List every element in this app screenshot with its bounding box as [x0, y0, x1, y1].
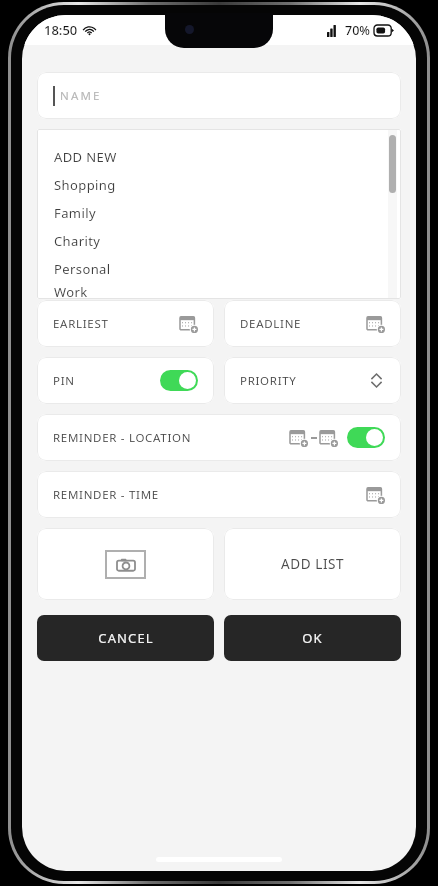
button[interactable]: CANCEL — [37, 615, 214, 661]
button[interactable]: REMINDER - LOCATION — [37, 414, 401, 461]
staticText: Family — [54, 204, 96, 222]
button[interactable]: REMINDER - TIME — [37, 471, 401, 518]
staticText: 18:50 — [44, 21, 78, 39]
button[interactable]: PIN — [37, 357, 214, 404]
staticText: ADD NEW — [54, 148, 117, 166]
button[interactable]: Toggle — [347, 427, 385, 448]
staticText: NAME — [60, 88, 102, 104]
button[interactable]: ADD NEW — [54, 143, 401, 171]
button[interactable]: EARLIEST — [37, 300, 214, 347]
staticText: LOCATION — [53, 259, 116, 275]
staticText: PLACE COMMENT — [53, 202, 158, 218]
staticText: Charity — [54, 232, 101, 250]
button[interactable]: CATEGORY — [37, 129, 401, 176]
button[interactable]: Personal — [54, 255, 401, 283]
staticText: REMINDER - LOCATION — [53, 430, 192, 446]
staticText: PIN — [53, 373, 75, 389]
staticText: Shopping — [54, 176, 116, 194]
button[interactable]: Family — [54, 199, 401, 227]
button[interactable]: Toggle — [160, 370, 198, 391]
staticText: ADD LIST — [281, 555, 345, 573]
button[interactable]: ADD LIST — [224, 528, 401, 600]
staticText: REMINDER - TIME — [53, 487, 159, 503]
button[interactable]: PLACE COMMENT — [37, 186, 401, 233]
staticText: DEADLINE — [240, 316, 302, 332]
button[interactable]: Shopping — [54, 171, 401, 199]
staticText: CANCEL — [98, 629, 154, 647]
staticText: EARLIEST — [53, 316, 109, 332]
button[interactable]: DEADLINE — [224, 300, 401, 347]
button[interactable]: PRIORITY — [224, 357, 401, 404]
staticText: Work — [54, 283, 88, 299]
staticText: Personal — [54, 260, 111, 278]
staticText: 70% — [345, 22, 370, 39]
button[interactable]: Take photo — [37, 528, 214, 600]
staticText: PRIORITY — [240, 373, 297, 389]
staticText: CATEGORY — [53, 145, 117, 161]
button[interactable]: Charity — [54, 227, 401, 255]
button[interactable]: NAME — [37, 72, 401, 119]
button[interactable]: LOCATION — [37, 243, 401, 290]
button[interactable]: Work — [54, 283, 401, 299]
button[interactable]: OK — [224, 615, 401, 661]
staticText: OK — [302, 629, 323, 647]
